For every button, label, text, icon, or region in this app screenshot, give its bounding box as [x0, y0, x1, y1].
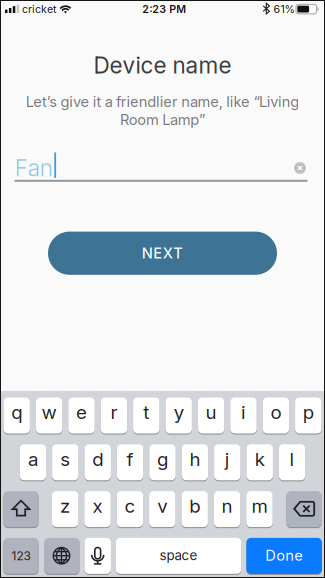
staticText: NEXT [142, 244, 183, 262]
staticText: w [42, 401, 57, 423]
staticText: l [290, 448, 295, 470]
staticText: v [157, 495, 167, 517]
button[interactable]: u [198, 397, 224, 433]
staticText: g [157, 448, 168, 470]
staticText: z [60, 495, 70, 517]
button[interactable]: b [181, 491, 208, 527]
staticText: space [160, 547, 198, 563]
button[interactable]: z [52, 491, 78, 527]
staticText: i [241, 401, 246, 423]
staticText: Done [265, 547, 303, 564]
staticText: n [222, 495, 233, 517]
button[interactable]: t [133, 397, 159, 433]
button[interactable]: s [52, 444, 78, 480]
button[interactable]: Shift [3, 491, 38, 527]
staticText: j [225, 448, 230, 470]
staticText: o [270, 401, 281, 423]
button[interactable]: q [3, 397, 30, 433]
button[interactable]: n [214, 491, 240, 527]
button[interactable]: k [246, 444, 273, 480]
button[interactable]: r [101, 397, 127, 433]
button[interactable]: NEXT [48, 232, 277, 275]
staticText: a [28, 448, 38, 470]
button[interactable]: space [116, 538, 241, 574]
button[interactable]: l [279, 444, 305, 480]
button[interactable]: m [246, 491, 273, 527]
staticText: r [110, 401, 117, 423]
button[interactable]: Clear text [294, 162, 306, 174]
staticText: cricket [22, 3, 56, 15]
button[interactable]: d [84, 444, 111, 480]
staticText: 61% [274, 3, 295, 15]
button[interactable]: j [214, 444, 240, 480]
button[interactable]: c [117, 491, 143, 527]
staticText: y [174, 401, 184, 423]
staticText: m [251, 495, 267, 517]
button[interactable]: Next keyboard [44, 538, 79, 574]
staticText: p [303, 401, 314, 423]
staticText: 123 [11, 549, 30, 563]
button[interactable]: x [84, 491, 111, 527]
button[interactable]: Delete [286, 491, 321, 527]
button[interactable]: Done [246, 538, 322, 574]
staticText: u [206, 401, 217, 423]
button[interactable]: f [117, 444, 143, 480]
staticText: d [92, 448, 103, 470]
button[interactable]: y [165, 397, 192, 433]
staticText: k [255, 448, 265, 470]
button[interactable]: w [36, 397, 62, 433]
staticText: Let’s give it a friendlier name, like “L… [26, 93, 299, 110]
staticText: h [189, 448, 200, 470]
staticText: e [76, 401, 87, 423]
button[interactable]: 123 [3, 538, 38, 574]
button[interactable]: o [263, 397, 289, 433]
staticText: s [60, 448, 70, 470]
staticText: Device name [93, 52, 231, 79]
button[interactable]: p [295, 397, 321, 433]
button[interactable]: v [149, 491, 175, 527]
button[interactable]: i [230, 397, 257, 433]
button[interactable]: g [149, 444, 176, 480]
button[interactable]: Dictation [84, 538, 111, 574]
button[interactable]: e [68, 397, 95, 433]
button[interactable]: a [20, 444, 46, 480]
staticText: Fan [15, 155, 53, 181]
staticText: 2:23 PM [142, 3, 186, 15]
staticText: b [189, 495, 200, 517]
staticText: Room Lamp” [120, 111, 205, 128]
staticText: t [143, 401, 149, 423]
button[interactable]: h [182, 444, 208, 480]
staticText: f [127, 448, 134, 470]
staticText: c [124, 495, 135, 517]
staticText: x [92, 495, 102, 517]
staticText: q [11, 401, 22, 423]
